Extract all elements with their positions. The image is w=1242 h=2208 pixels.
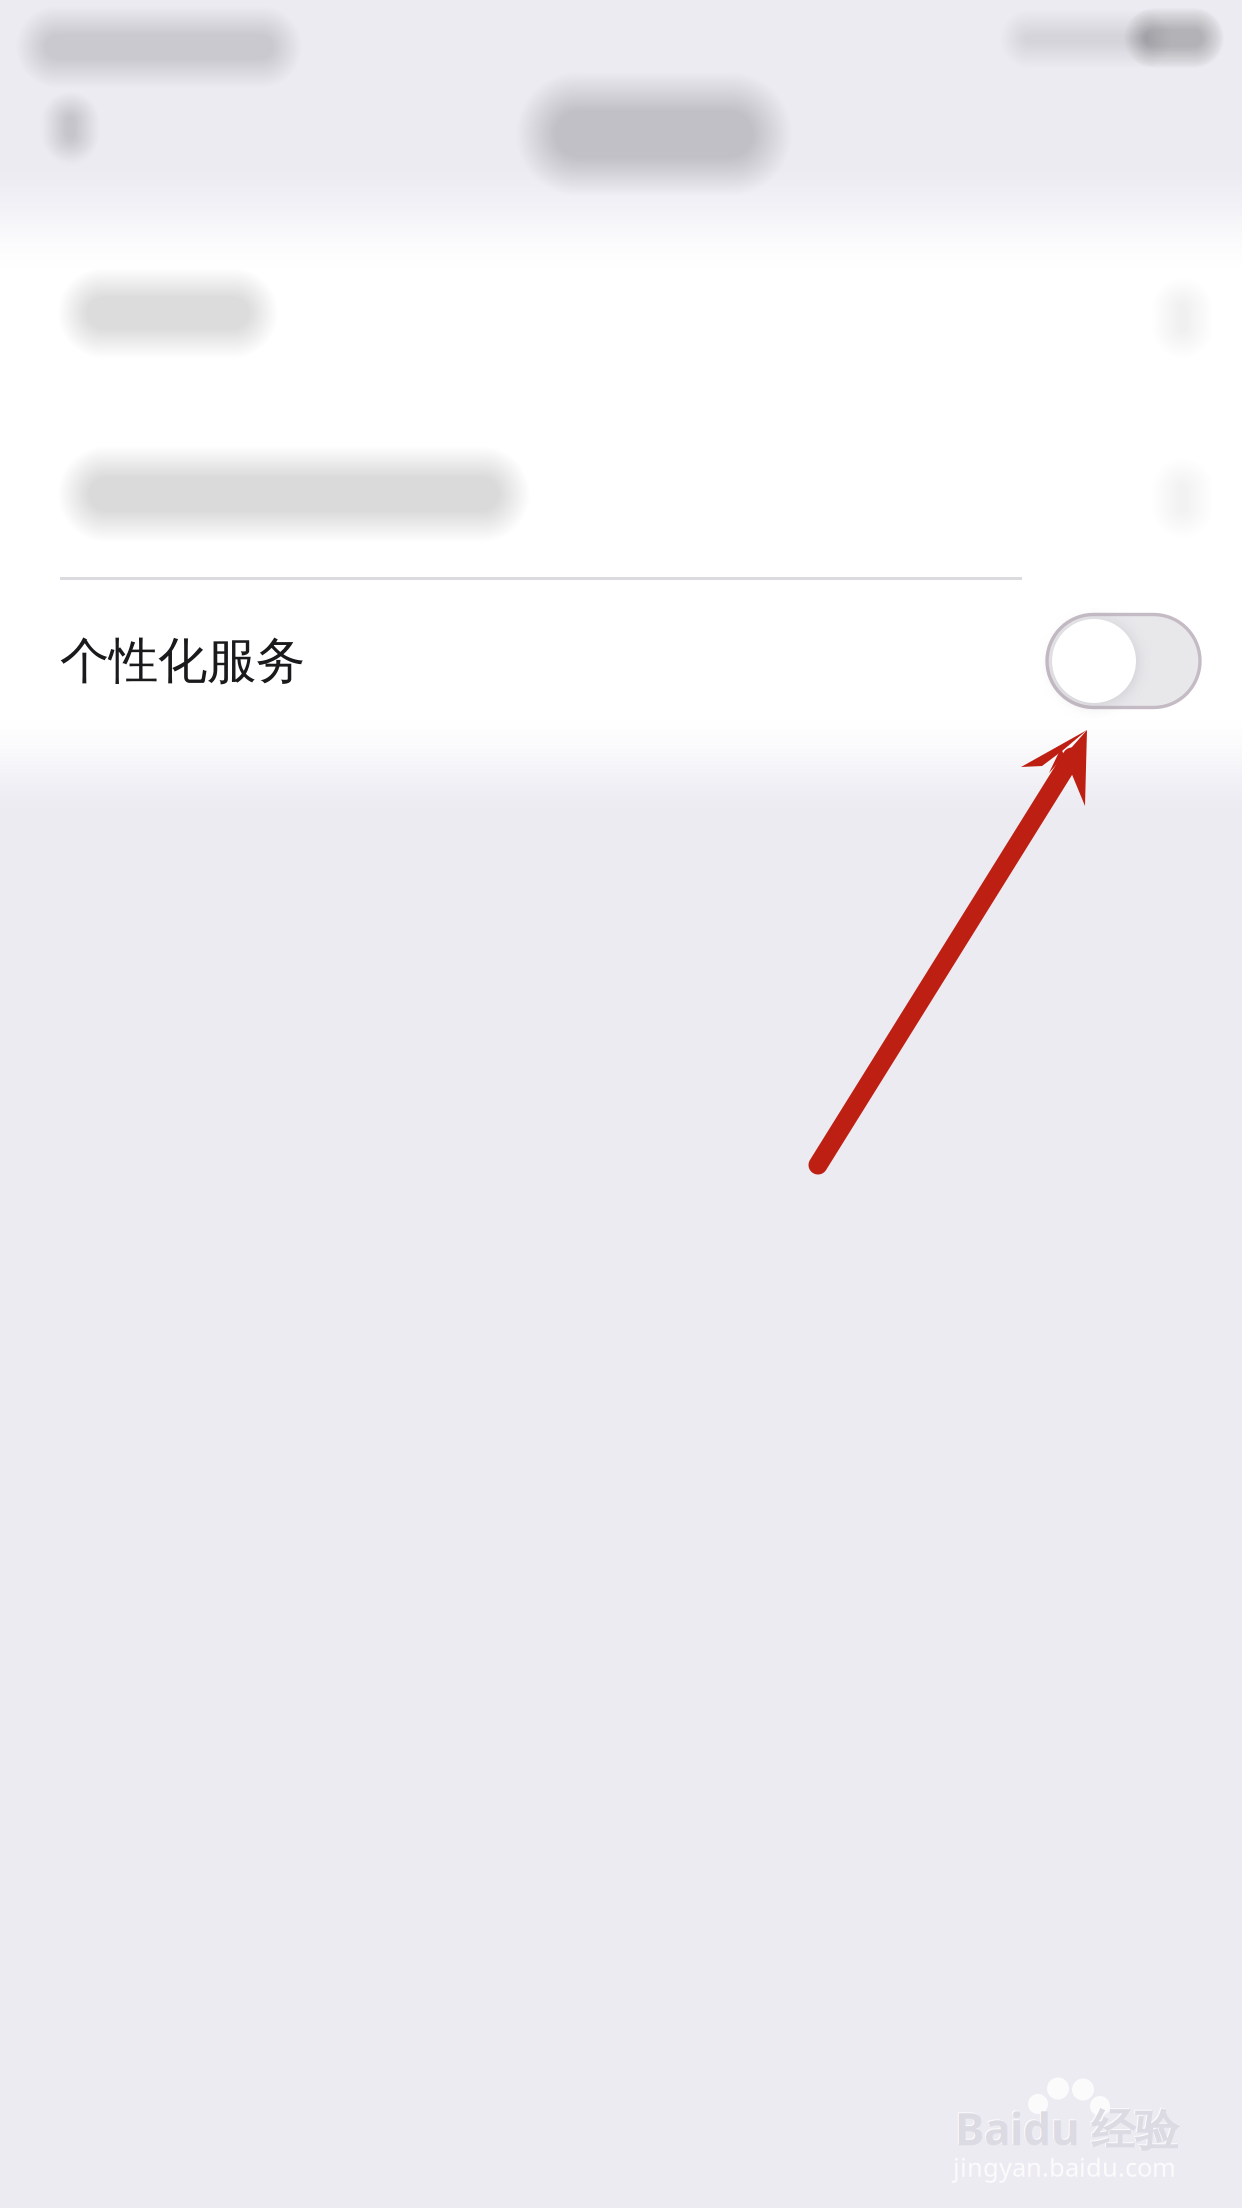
staticText: 个性化服务: [60, 631, 305, 691]
staticText: Baidu 经验: [955, 2099, 1179, 2158]
staticText: jingyan.baidu.com: [953, 2150, 1176, 2184]
staticText: Baidu 经验: [954, 2098, 1178, 2157]
button[interactable]: 个性化服务: [0, 587, 1242, 735]
